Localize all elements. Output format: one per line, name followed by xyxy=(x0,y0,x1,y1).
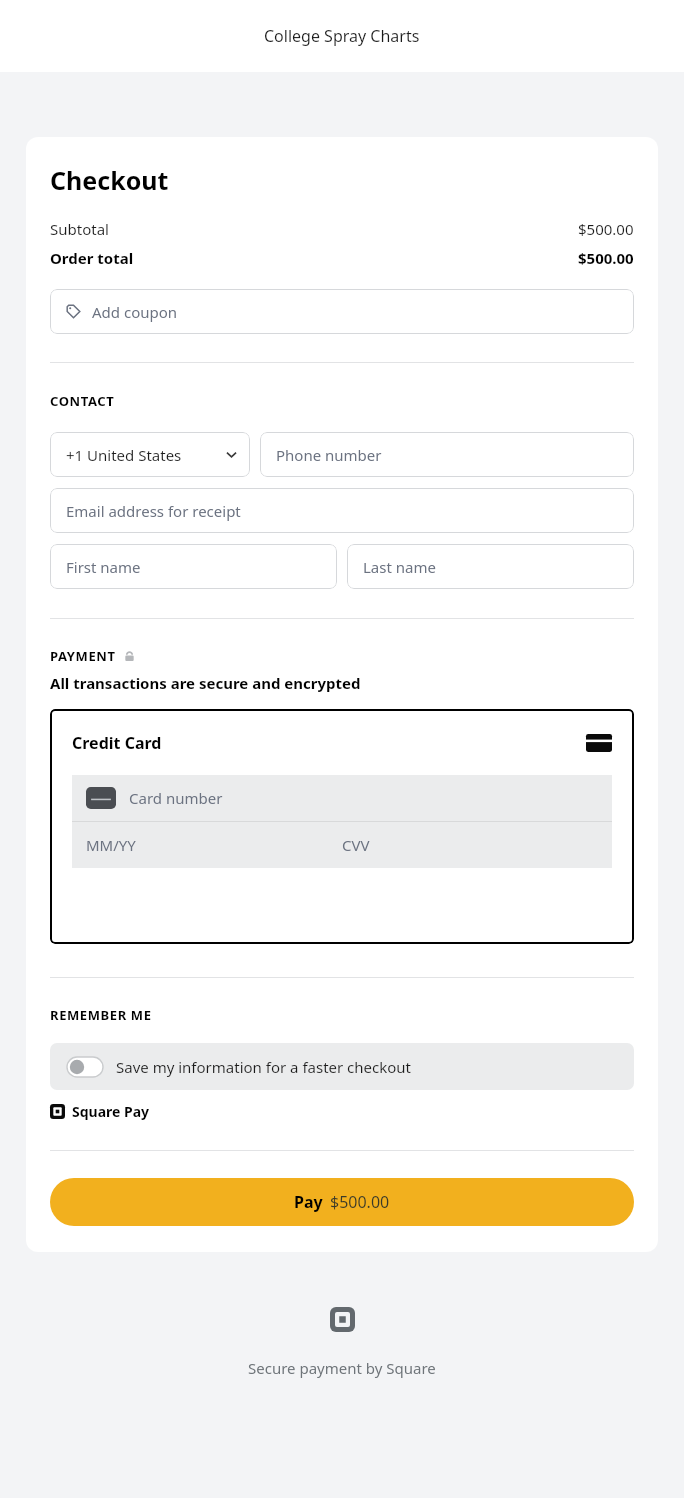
staticText: Order total xyxy=(50,248,134,268)
staticText: Credit Card xyxy=(72,732,162,754)
button[interactable]: First name xyxy=(50,544,337,589)
button[interactable]: Pay xyxy=(50,1178,634,1226)
other: Select country xyxy=(225,448,238,461)
button[interactable]: MM/YY xyxy=(72,822,612,868)
staticText: Save my information for a faster checkou… xyxy=(116,1057,412,1077)
button[interactable]: Coupon tag xyxy=(50,289,634,334)
staticText: CONTACT xyxy=(50,392,115,410)
staticText: Card number xyxy=(129,788,223,808)
staticText: +1 United States xyxy=(66,445,182,465)
button[interactable]: Email address for receipt xyxy=(50,488,634,533)
staticText: Secure payment by Square xyxy=(248,1358,436,1378)
staticText: All transactions are secure and encrypte… xyxy=(50,673,361,693)
staticText: Add coupon xyxy=(92,302,178,322)
staticText: Subtotal xyxy=(50,219,109,239)
other: Square xyxy=(330,1307,355,1332)
button[interactable]: Credit Card xyxy=(50,709,634,944)
staticText: Email address for receipt xyxy=(66,501,241,521)
other: Credit card xyxy=(586,734,612,752)
button[interactable]: Square Pay xyxy=(50,1102,150,1121)
button[interactable]: Save my information toggle xyxy=(50,1043,634,1090)
other: Coupon tag xyxy=(66,304,81,319)
button[interactable]: Phone number xyxy=(260,432,634,477)
staticText: $500.00 xyxy=(578,248,634,268)
staticText: $500.00 xyxy=(330,1191,390,1213)
staticText: First name xyxy=(66,557,141,577)
staticText: MM/YY xyxy=(86,835,136,855)
staticText: Checkout xyxy=(50,163,169,197)
staticText: Last name xyxy=(363,557,436,577)
button[interactable]: Last name xyxy=(347,544,634,589)
other: Save my information toggle xyxy=(67,1057,103,1077)
staticText: PAYMENT xyxy=(50,647,116,665)
staticText: Pay xyxy=(294,1191,323,1213)
staticText: Square Pay xyxy=(72,1102,150,1121)
button[interactable]: Card number xyxy=(72,775,612,821)
button[interactable]: +1 United States xyxy=(50,432,250,477)
staticText: Phone number xyxy=(276,445,382,465)
staticText: REMEMBER ME xyxy=(50,1006,152,1024)
staticText: $500.00 xyxy=(578,219,634,239)
staticText: CVV xyxy=(342,835,370,855)
staticText: College Spray Charts xyxy=(264,25,420,47)
